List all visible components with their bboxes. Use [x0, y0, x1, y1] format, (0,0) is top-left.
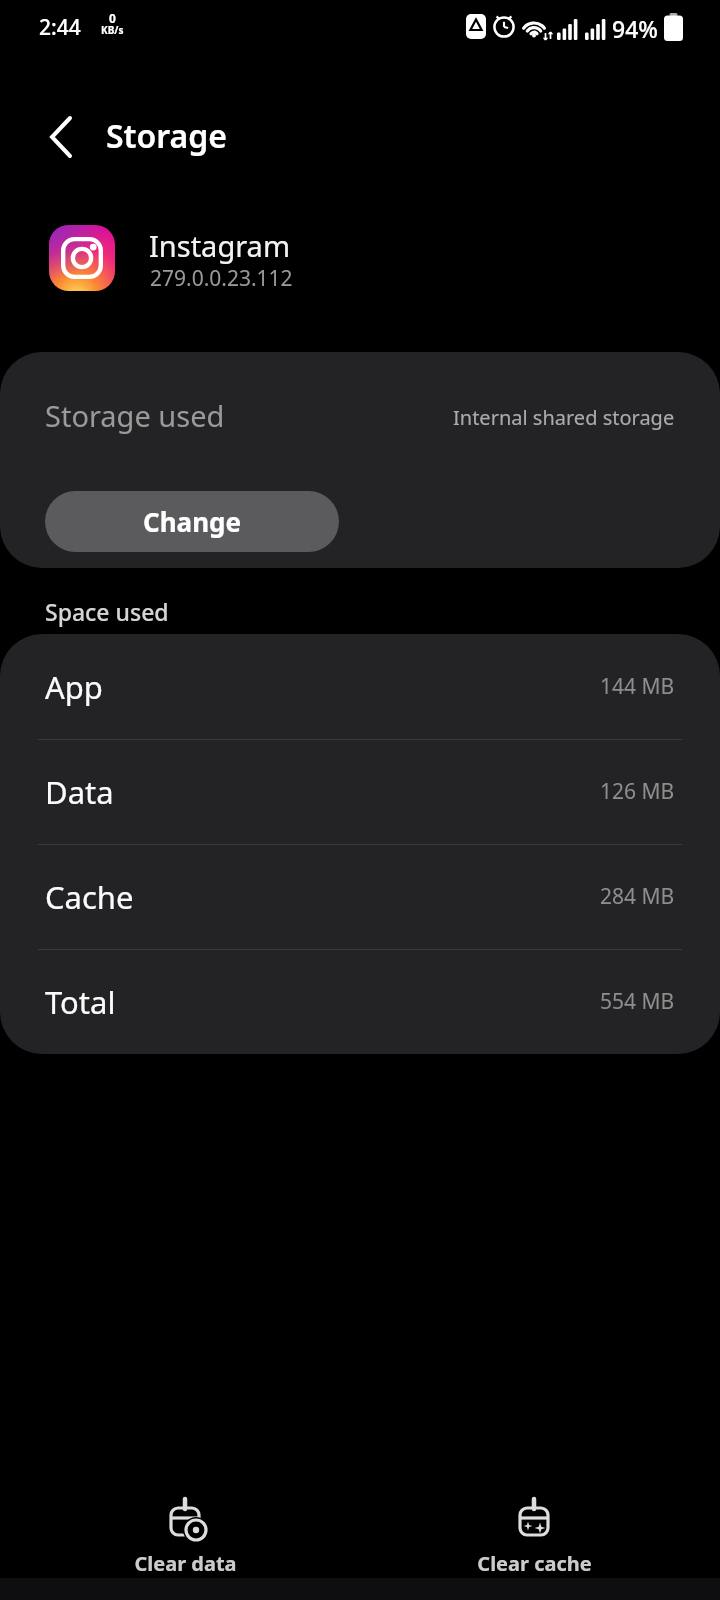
- staticText: KB/s: [101, 23, 124, 37]
- staticText: Storage used: [45, 396, 225, 435]
- staticText: Instagram: [149, 226, 290, 265]
- staticText: Data: [45, 771, 114, 813]
- staticText: 279.0.0.23.112: [150, 264, 293, 293]
- staticText: Storage: [106, 114, 228, 158]
- button[interactable]: App: [0, 634, 720, 739]
- button[interactable]: Change: [45, 491, 339, 552]
- staticText: 94%: [612, 13, 658, 44]
- staticText: 284 MB: [600, 882, 675, 911]
- staticText: 126 MB: [600, 777, 675, 806]
- staticText: Cache: [45, 876, 134, 918]
- button[interactable]: Data: [0, 739, 720, 844]
- staticText: Clear cache: [477, 1550, 592, 1577]
- staticText: 2:44: [39, 13, 81, 42]
- button[interactable]: Total: [0, 949, 720, 1054]
- staticText: Clear data: [134, 1550, 237, 1577]
- staticText: 0: [109, 10, 116, 26]
- staticText: Total: [45, 981, 116, 1023]
- button[interactable]: [36, 113, 84, 161]
- staticText: 144 MB: [600, 672, 675, 701]
- button[interactable]: Cache: [0, 844, 720, 949]
- staticText: Change: [143, 504, 242, 539]
- staticText: App: [45, 666, 103, 708]
- staticText: Space used: [45, 596, 169, 627]
- button[interactable]: Clear data: [95, 1494, 275, 1594]
- staticText: 554 MB: [600, 987, 675, 1016]
- staticText: Internal shared storage: [453, 404, 675, 431]
- button[interactable]: Clear cache: [444, 1494, 624, 1594]
